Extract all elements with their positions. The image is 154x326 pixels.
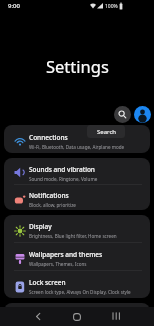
staticText: Connections — [29, 133, 68, 142]
staticText: Wi-Fi, Bluetooth, Data usage, Airplane m… — [29, 144, 125, 150]
staticText: Search — [97, 128, 116, 136]
staticText: Sound mode, Ringtone, Volume — [29, 176, 98, 182]
button[interactable] — [25, 307, 51, 326]
button[interactable] — [64, 307, 90, 326]
staticText: Display — [29, 222, 52, 231]
staticText: 100% — [105, 3, 118, 10]
staticText: Screen lock type, Always On Display, Clo… — [29, 289, 131, 295]
button[interactable]: Lock screen — [4, 271, 150, 298]
staticText: Brightness, Blue light filter, Home scre… — [29, 233, 117, 239]
button[interactable]: Sounds and vibration — [4, 158, 150, 184]
staticText: Sounds and vibration — [29, 165, 95, 174]
button[interactable] — [114, 106, 131, 123]
staticText: 9:00 — [8, 2, 20, 10]
staticText: Notifications — [29, 191, 69, 200]
staticText: Lock screen — [29, 278, 66, 287]
button[interactable]: Notifications — [4, 185, 150, 210]
button[interactable] — [103, 307, 129, 326]
button[interactable] — [134, 106, 151, 123]
staticText: Block, allow, prioritize — [29, 202, 76, 208]
button[interactable]: Display — [4, 215, 150, 242]
staticText: Wallpapers, Themes, Icons — [29, 261, 87, 267]
staticText: Wallpapers and themes — [29, 250, 103, 259]
staticText: Settings — [46, 55, 109, 77]
button[interactable]: Wallpapers and themes — [4, 243, 150, 270]
button[interactable]: Connections — [4, 125, 150, 153]
